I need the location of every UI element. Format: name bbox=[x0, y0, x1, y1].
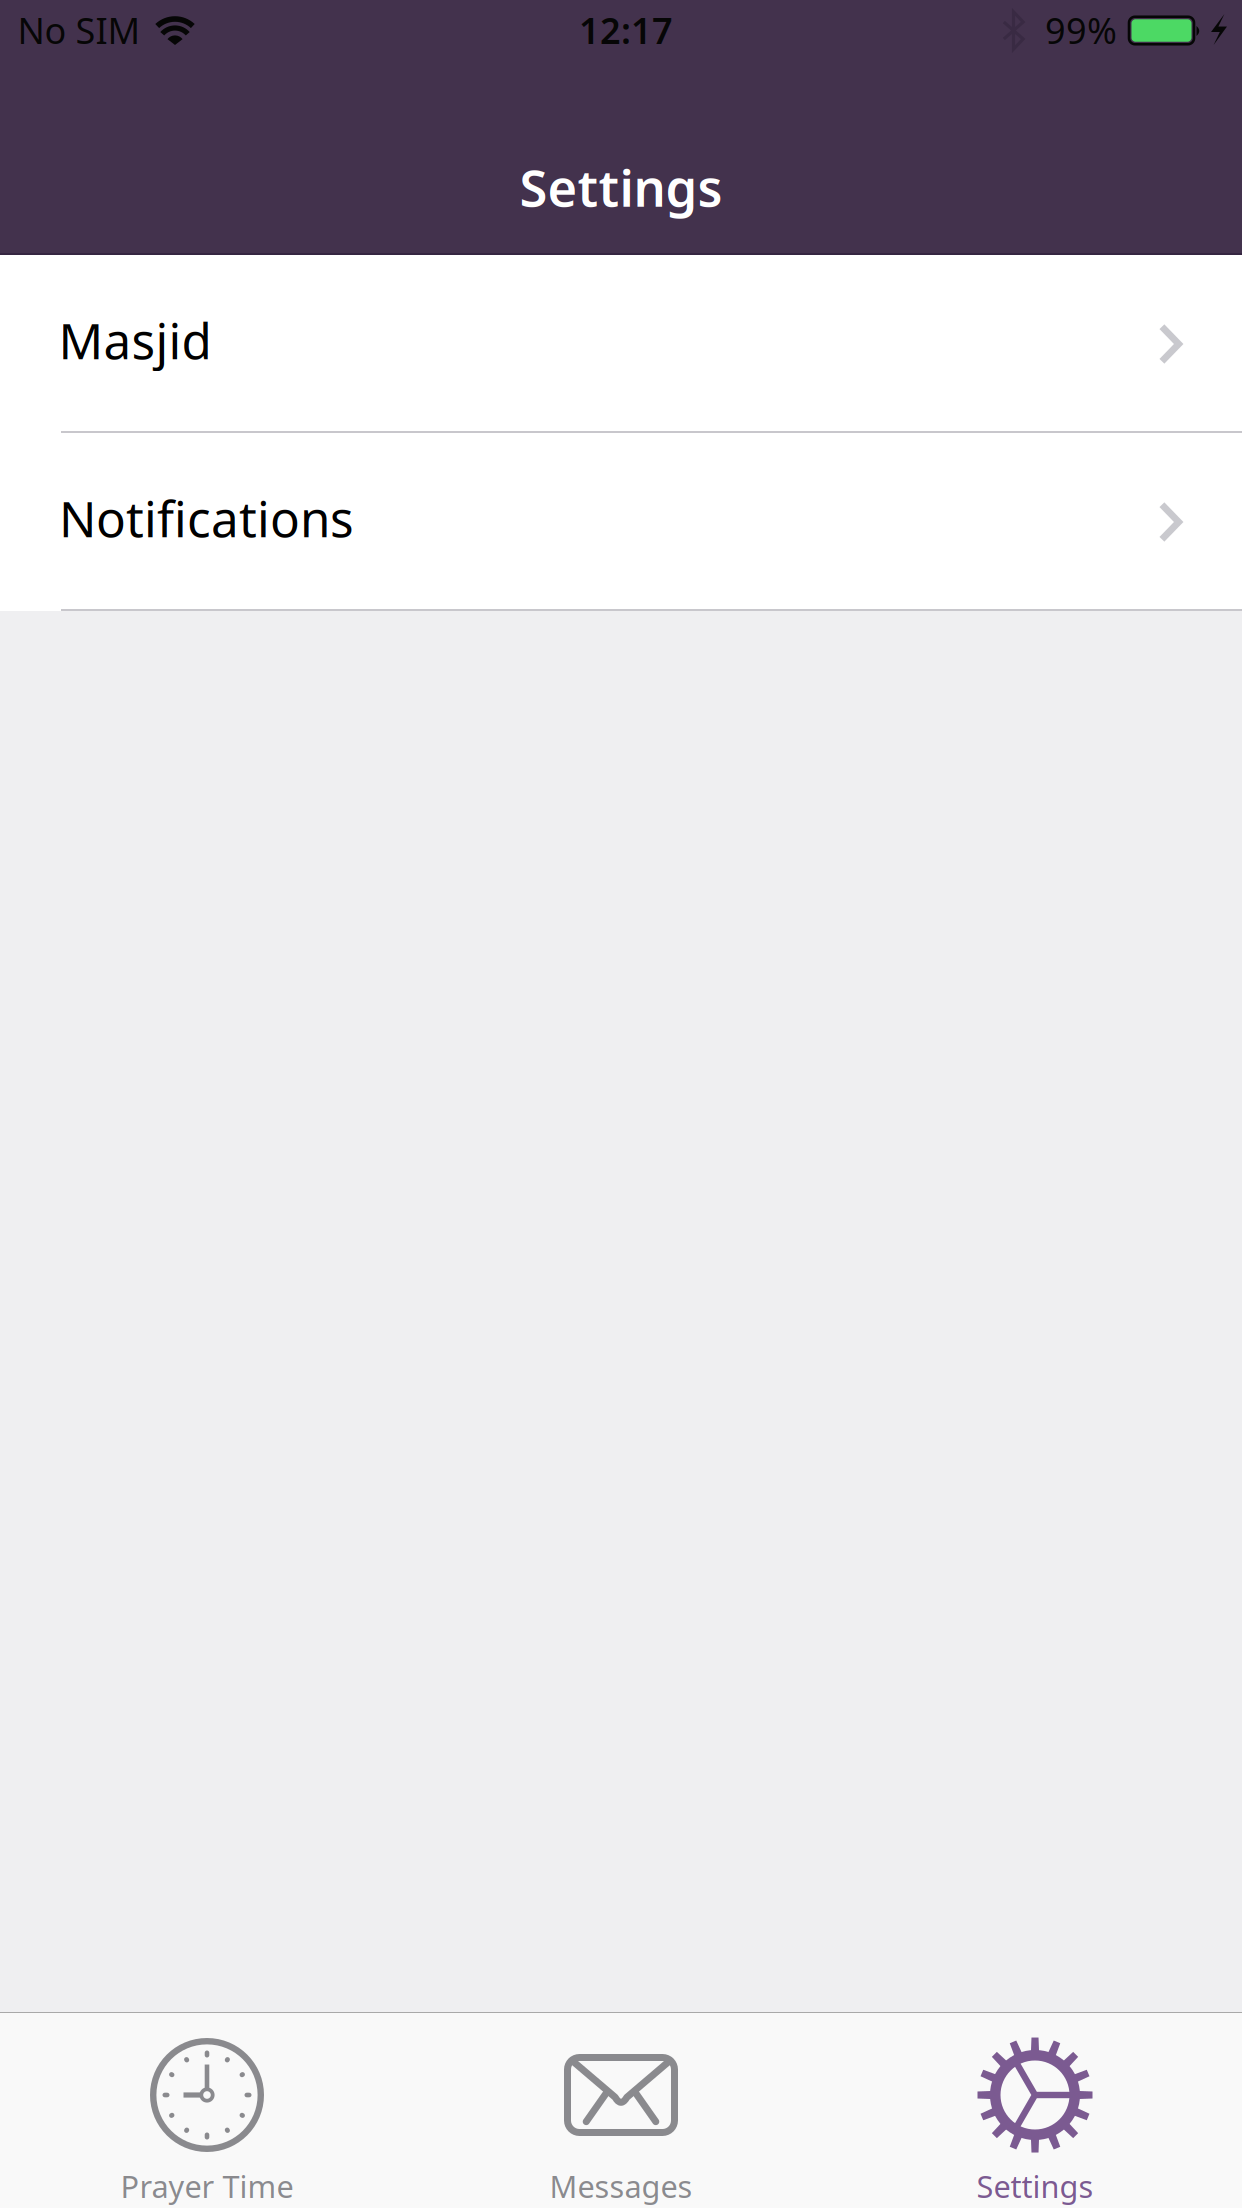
button[interactable]: Masjid bbox=[0, 255, 1242, 431]
staticText: 12:17 bbox=[579, 6, 673, 54]
staticText: Prayer Time bbox=[120, 2166, 293, 2206]
staticText: Masjid bbox=[58, 307, 211, 373]
staticText: Settings bbox=[976, 2166, 1093, 2206]
button[interactable]: Messages bbox=[414, 2013, 828, 2208]
button[interactable]: Settings bbox=[828, 2013, 1242, 2208]
button[interactable]: Prayer Time bbox=[0, 2013, 414, 2208]
staticText: Messages bbox=[549, 2166, 692, 2206]
staticText: Settings bbox=[519, 153, 722, 221]
staticText: 99% bbox=[1045, 6, 1117, 54]
staticText: No SIM bbox=[17, 6, 140, 54]
button[interactable]: Notifications bbox=[0, 433, 1242, 609]
staticText: Notifications bbox=[59, 485, 354, 551]
